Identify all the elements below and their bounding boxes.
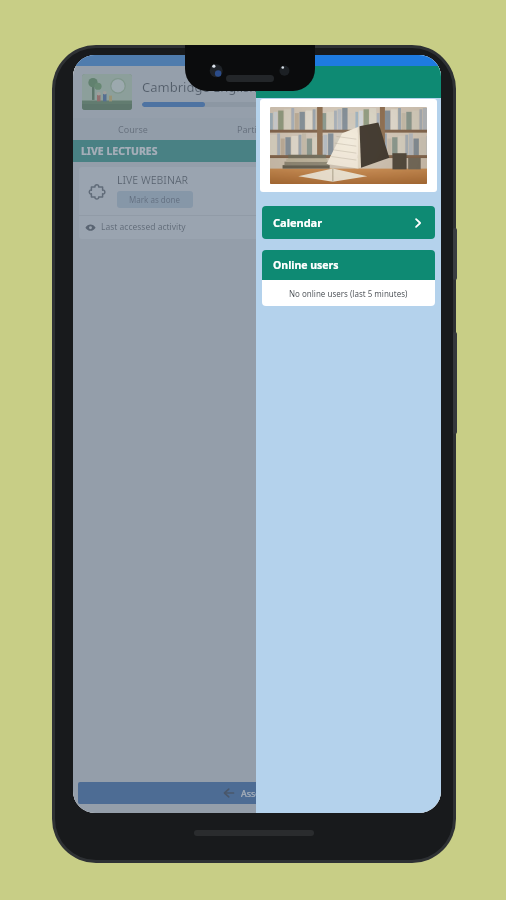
button[interactable]: Participants — [193, 118, 332, 140]
button[interactable]: Grades — [332, 118, 441, 140]
staticText: Online users — [273, 258, 339, 272]
staticText: Cambridge English — [142, 78, 258, 96]
button[interactable]: Cambridge English — [73, 66, 441, 118]
button[interactable] — [260, 99, 437, 192]
staticText: Participants — [237, 123, 288, 135]
button[interactable]: LIVE LECTURES — [73, 140, 441, 162]
staticText: LIVE WEBINAR — [117, 173, 189, 187]
staticText: Calendar — [273, 215, 412, 230]
button[interactable]: Assessment — [78, 782, 436, 804]
staticText: Course — [118, 123, 148, 135]
staticText: Mark as done — [129, 194, 181, 205]
staticText: Last accessed activity — [101, 221, 186, 233]
button[interactable]: Course — [73, 118, 193, 140]
staticText: LIVE LECTURES — [81, 144, 158, 158]
button[interactable]: LIVE WEBINAR — [79, 167, 435, 239]
staticText: No online users (last 5 minutes) — [289, 288, 408, 299]
staticText: Grades — [371, 123, 402, 135]
button[interactable]: Calendar — [262, 206, 435, 239]
button[interactable]: Online users — [262, 250, 435, 306]
button[interactable]: Mark as done — [117, 191, 193, 208]
staticText: Assessment — [241, 787, 292, 799]
